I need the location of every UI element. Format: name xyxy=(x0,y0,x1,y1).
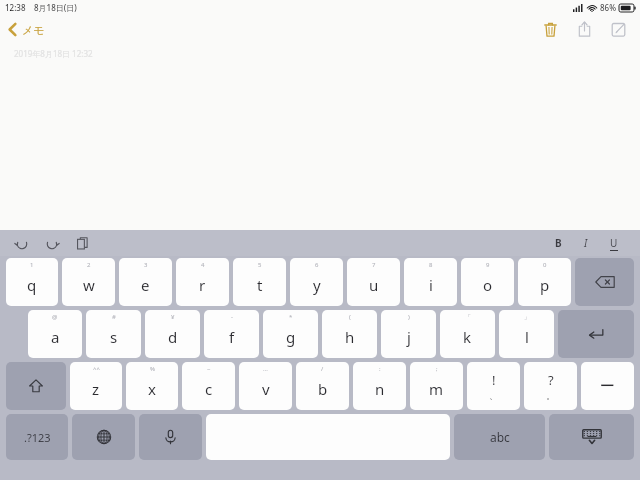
button[interactable]: 5 xyxy=(233,258,286,306)
staticText: s xyxy=(110,327,118,347)
staticText: l xyxy=(525,327,529,347)
button[interactable]: Hide keyboard xyxy=(549,414,634,460)
button[interactable]: ~ xyxy=(182,362,235,410)
staticText: ) xyxy=(408,313,410,321)
button[interactable]: ) xyxy=(381,310,436,358)
button[interactable]: 4 xyxy=(176,258,229,306)
button[interactable]: 6 xyxy=(290,258,343,306)
button[interactable]: 8 xyxy=(404,258,457,306)
staticText: b xyxy=(318,379,328,399)
button[interactable]: 」 xyxy=(499,310,554,358)
staticText: w xyxy=(83,275,95,295)
staticText: 5 xyxy=(258,261,262,269)
button[interactable]: Share xyxy=(570,15,598,43)
staticText: 「 xyxy=(465,313,471,321)
button[interactable]: Shift xyxy=(6,362,66,410)
staticText: i xyxy=(429,275,433,295)
button[interactable]: : xyxy=(353,362,406,410)
staticText: 」 xyxy=(524,313,530,321)
button[interactable]: 1 xyxy=(6,258,58,306)
button[interactable]: Backspace xyxy=(575,258,634,306)
staticText: % xyxy=(150,365,155,373)
staticText: * xyxy=(289,313,293,321)
staticText: ^^ xyxy=(93,365,100,373)
staticText: 4 xyxy=(201,261,205,269)
staticText: k xyxy=(463,327,472,347)
staticText: 8 xyxy=(429,261,433,269)
button[interactable]: abc xyxy=(454,414,545,460)
button[interactable]: - xyxy=(204,310,259,358)
staticText: 7 xyxy=(372,261,376,269)
button[interactable]: New note xyxy=(604,15,632,43)
staticText: I xyxy=(584,236,588,250)
button[interactable]: @ xyxy=(28,310,82,358)
staticText: q xyxy=(27,275,37,295)
button[interactable]: 9 xyxy=(461,258,514,306)
button[interactable]: 0 xyxy=(518,258,571,306)
staticText: ~ xyxy=(207,365,211,373)
button[interactable]: Redo xyxy=(40,231,64,255)
staticText: - xyxy=(231,313,233,321)
staticText: p xyxy=(540,275,550,295)
staticText: f xyxy=(229,327,235,347)
staticText: 0 xyxy=(543,261,547,269)
staticText: ; xyxy=(436,365,438,373)
button[interactable]: ¥ xyxy=(145,310,200,358)
button[interactable]: Paste xyxy=(70,231,94,255)
staticText: B xyxy=(555,236,562,250)
staticText: 3 xyxy=(144,261,148,269)
staticText: 8月18日(日) xyxy=(34,2,77,13)
staticText: v xyxy=(262,379,270,399)
button[interactable]: % xyxy=(126,362,178,410)
button[interactable]: ー xyxy=(581,362,634,410)
staticText: ... xyxy=(263,365,268,373)
button[interactable]: ? xyxy=(524,362,577,410)
staticText: y xyxy=(313,275,321,295)
button[interactable]: Change language xyxy=(72,414,135,460)
staticText: ? xyxy=(548,371,554,389)
staticText: o xyxy=(483,275,493,295)
staticText: 1 xyxy=(30,261,34,269)
button[interactable]: 7 xyxy=(347,258,400,306)
staticText: ¥ xyxy=(171,313,175,321)
button[interactable]: メモ xyxy=(4,19,49,40)
button[interactable]: / xyxy=(296,362,349,410)
staticText: 9 xyxy=(486,261,490,269)
staticText: メモ xyxy=(22,23,45,37)
button[interactable]: Dictation xyxy=(139,414,202,460)
staticText: d xyxy=(168,327,178,347)
button[interactable]: ! xyxy=(467,362,520,410)
button[interactable]: 「 xyxy=(440,310,495,358)
staticText: 86% xyxy=(600,2,616,13)
staticText: abc xyxy=(490,429,510,445)
staticText: @ xyxy=(52,313,58,321)
staticText: c xyxy=(205,379,213,399)
button[interactable]: 2 xyxy=(62,258,115,306)
button[interactable]: # xyxy=(86,310,141,358)
button[interactable]: ... xyxy=(239,362,292,410)
staticText: : xyxy=(379,365,381,373)
button[interactable]: 3 xyxy=(119,258,172,306)
button[interactable]: Undo xyxy=(10,231,34,255)
staticText: # xyxy=(112,313,116,321)
staticText: 。 xyxy=(546,390,555,401)
staticText: z xyxy=(92,379,100,399)
button[interactable]: ( xyxy=(322,310,377,358)
staticText: j xyxy=(407,327,411,347)
button[interactable]: Return xyxy=(558,310,634,358)
staticText: 2019年8月18日 12:32 xyxy=(14,48,93,59)
staticText: .?123 xyxy=(24,430,51,445)
button[interactable]: B xyxy=(548,233,568,253)
button[interactable]: ; xyxy=(410,362,463,410)
staticText: ー xyxy=(600,377,615,396)
button[interactable]: .?123 xyxy=(6,414,68,460)
button[interactable]: ^^ xyxy=(70,362,122,410)
staticText: ! xyxy=(492,371,496,389)
staticText: x xyxy=(148,379,156,399)
button[interactable]: * xyxy=(263,310,318,358)
button[interactable]: Delete xyxy=(536,15,564,43)
button[interactable]: I xyxy=(576,233,596,253)
button[interactable]: U xyxy=(604,233,624,253)
